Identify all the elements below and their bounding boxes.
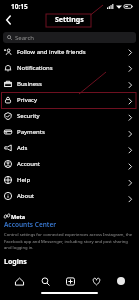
staticText: Settings <box>55 15 84 25</box>
button[interactable]: Payments <box>0 124 139 140</box>
staticText: Follow and invite friends <box>17 48 86 56</box>
staticText: Meta <box>11 213 26 220</box>
staticText: Payments <box>17 128 45 136</box>
staticText: Ads <box>17 144 28 152</box>
button[interactable]: Business <box>0 76 139 92</box>
staticText: Accounts Center <box>4 220 57 229</box>
button[interactable]: Notifications <box>0 60 139 76</box>
button[interactable]: About <box>0 188 139 204</box>
staticText: Account <box>17 160 40 168</box>
staticText: Control settings for connected experienc… <box>4 232 136 250</box>
staticText: Notifications <box>17 64 53 72</box>
staticText: Privacy <box>17 96 38 104</box>
button[interactable]: Privacy <box>0 92 139 108</box>
staticText: About <box>17 192 35 200</box>
staticText: Search <box>15 34 34 42</box>
button[interactable]: Home <box>12 274 26 288</box>
button[interactable]: Accounts Center <box>0 220 139 250</box>
button[interactable]: Security <box>0 108 139 124</box>
staticText: Help <box>17 176 31 184</box>
staticText: Logins <box>4 257 27 267</box>
button[interactable]: Follow and invite friends <box>0 44 139 60</box>
button[interactable]: Back <box>0 12 16 28</box>
button[interactable]: Search <box>38 274 52 288</box>
staticText: Business <box>17 80 42 88</box>
staticText: 10:15 <box>11 2 28 11</box>
button[interactable]: Account <box>0 156 139 172</box>
button[interactable]: Ads <box>0 140 139 156</box>
button[interactable]: Activity <box>89 274 103 288</box>
button[interactable]: Create <box>63 274 77 288</box>
button[interactable]: Help <box>0 172 139 188</box>
button[interactable]: Search <box>3 32 136 43</box>
button[interactable]: Profile <box>115 275 127 287</box>
staticText: Security <box>17 112 40 120</box>
